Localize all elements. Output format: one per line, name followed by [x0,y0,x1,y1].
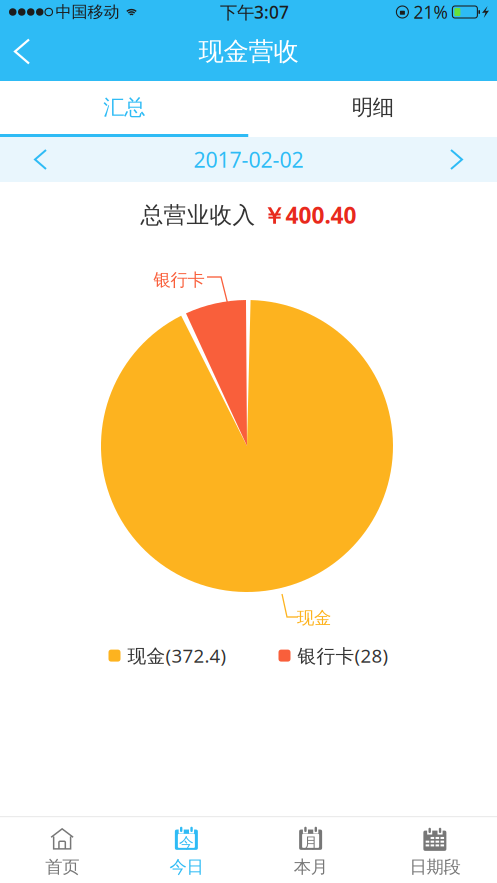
button[interactable]: 首页 [0,817,124,883]
staticText: 今日 [169,856,203,878]
button[interactable]: 汇总 [0,81,248,134]
button[interactable]: 明细 [248,81,497,134]
staticText: 月 [303,834,318,852]
button[interactable]: Previous day [0,137,75,182]
staticText: 21% [413,0,447,23]
button[interactable]: 月 [248,817,373,883]
button[interactable]: 今 [124,817,248,883]
staticText: 明细 [352,94,394,121]
staticText: 日期段 [409,856,460,878]
staticText: 首页 [45,856,79,878]
staticText: 现金(372.4) [127,643,226,668]
button[interactable]: Back [0,29,45,73]
staticText: 2017-02-02 [193,145,303,174]
staticText: 现金 [297,607,331,629]
staticText: ￥400.40 [262,200,356,230]
staticText: 总营业收入 [140,201,255,229]
staticText: 汇总 [103,94,145,121]
staticText: 本月 [294,856,328,878]
button[interactable]: 日期段 [373,817,497,883]
staticText: 下午3:07 [220,0,289,23]
staticText: 今 [179,834,194,852]
staticText: 银行卡(28) [297,643,388,668]
staticText: 中国移动 [55,2,119,22]
staticText: 现金营收 [198,36,298,67]
button[interactable]: Next day [422,137,497,182]
staticText: 银行卡 [153,269,204,291]
